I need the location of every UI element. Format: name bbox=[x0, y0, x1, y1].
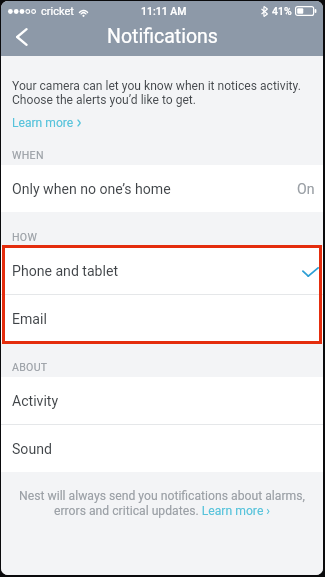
staticText: On bbox=[297, 181, 315, 198]
staticText: Nest will always send you notifications … bbox=[17, 489, 307, 518]
button[interactable]: Back bbox=[1, 21, 43, 56]
staticText: Notifications bbox=[107, 25, 218, 48]
button[interactable]: Learn more bbox=[12, 116, 81, 130]
button[interactable]: Email bbox=[1, 295, 323, 342]
staticText: Your camera can let you know when it not… bbox=[12, 79, 301, 107]
staticText: Phone and tablet bbox=[12, 263, 119, 280]
staticText: WHEN bbox=[12, 149, 44, 161]
staticText: Sound bbox=[12, 441, 52, 458]
staticText: HOW bbox=[12, 231, 38, 243]
staticText: Email bbox=[12, 311, 47, 328]
staticText: ABOUT bbox=[12, 361, 48, 373]
button[interactable]: Sound bbox=[1, 425, 323, 472]
staticText: 41% bbox=[272, 5, 292, 17]
staticText: Learn more bbox=[12, 116, 74, 130]
button[interactable]: Only when no one’s home bbox=[1, 165, 323, 212]
staticText: Only when no one’s home bbox=[12, 181, 171, 198]
button[interactable]: Activity bbox=[1, 377, 323, 424]
staticText: Activity bbox=[12, 393, 59, 410]
staticText: cricket bbox=[41, 5, 74, 18]
button[interactable]: Phone and tablet bbox=[1, 247, 323, 294]
staticText: 11:11 AM bbox=[141, 5, 187, 17]
